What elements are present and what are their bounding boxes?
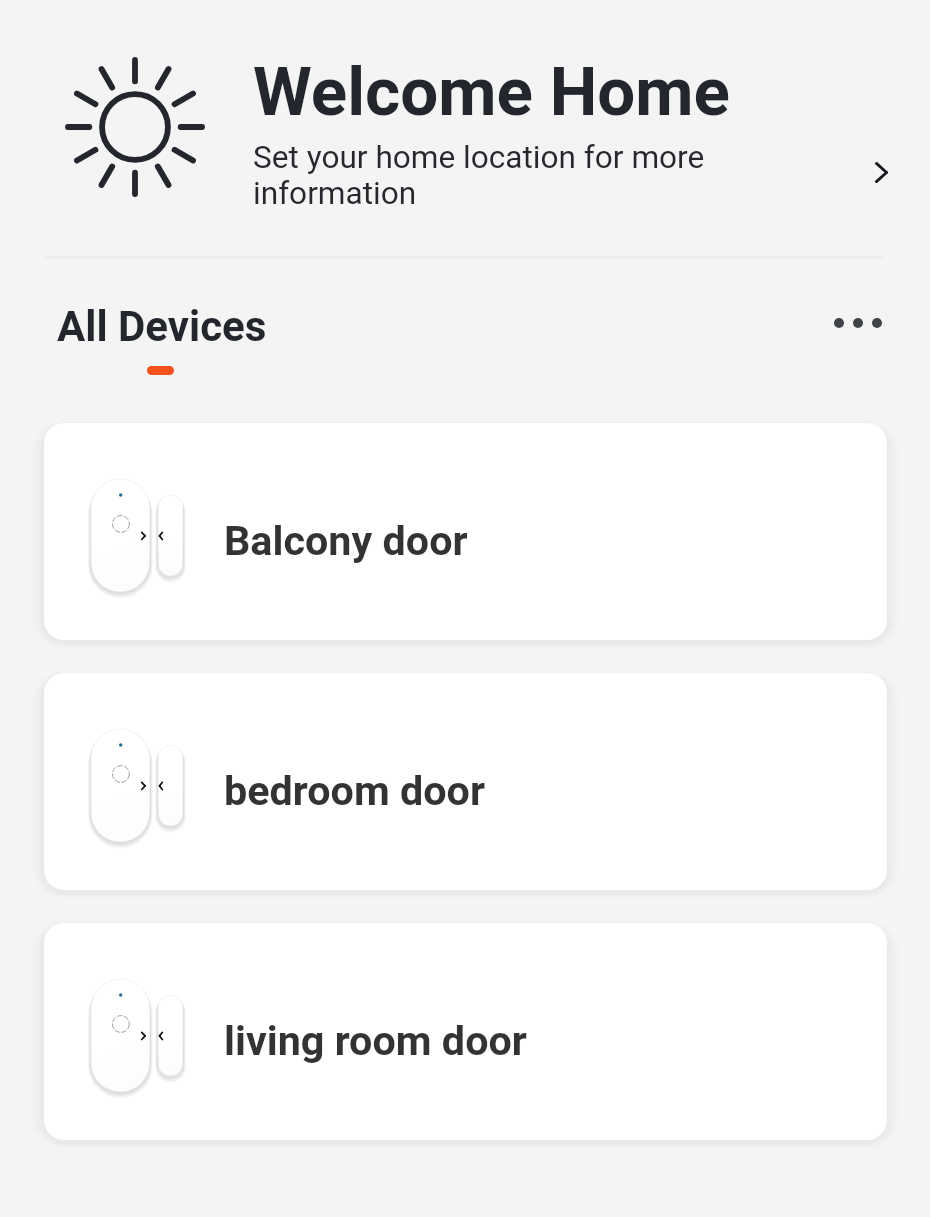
staticText: Set your home location for more informat… — [253, 139, 705, 212]
staticText: living room door — [224, 1017, 527, 1065]
button[interactable]: Balcony door — [44, 423, 887, 640]
staticText: All Devices — [57, 302, 267, 351]
button[interactable]: living room door — [44, 923, 887, 1140]
button[interactable]: bedroom door — [44, 673, 887, 890]
staticText: bedroom door — [224, 767, 486, 815]
staticText: Balcony door — [224, 517, 468, 565]
button[interactable]: Welcome Home — [0, 0, 930, 257]
staticText: Welcome Home — [253, 53, 730, 132]
button[interactable]: Set home location — [849, 140, 913, 204]
button[interactable]: More options — [812, 295, 904, 351]
